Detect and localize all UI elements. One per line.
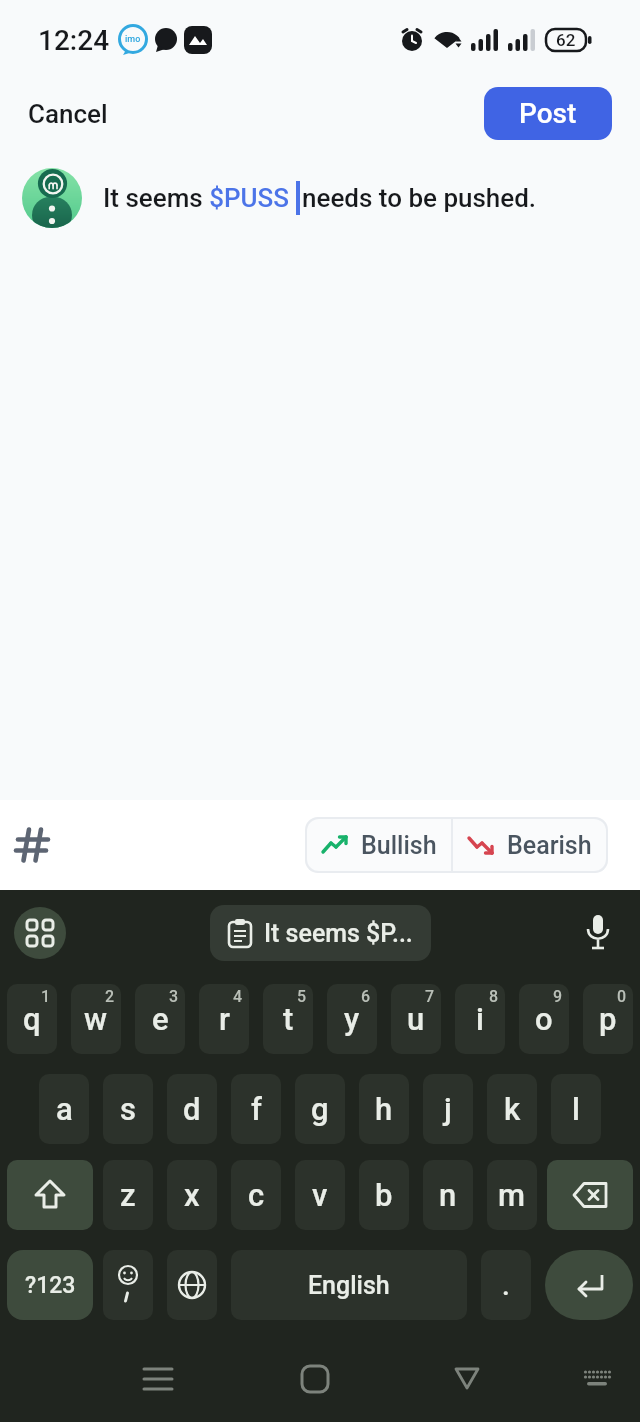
staticText: p	[599, 1001, 617, 1037]
button[interactable]: j	[423, 1074, 473, 1144]
staticText: i	[476, 1001, 484, 1037]
staticText: q	[23, 1001, 41, 1037]
staticText: 2	[105, 987, 115, 1006]
button[interactable]	[578, 913, 618, 953]
button[interactable]: r	[199, 984, 249, 1054]
staticText: r	[219, 1001, 230, 1037]
staticText: t	[283, 1001, 294, 1037]
button[interactable]: l	[551, 1074, 601, 1144]
staticText: needs to be pushed.	[302, 183, 537, 213]
staticText: o	[535, 1001, 553, 1037]
staticText: 9	[553, 987, 563, 1006]
staticText: f	[251, 1091, 262, 1127]
button[interactable]: e	[135, 984, 185, 1054]
staticText: a	[56, 1091, 73, 1127]
button[interactable]: .	[481, 1250, 531, 1320]
button[interactable]: a	[39, 1074, 89, 1144]
staticText: h	[375, 1091, 393, 1127]
button[interactable]: k	[487, 1074, 537, 1144]
button[interactable]: v	[295, 1160, 345, 1230]
button[interactable]: m	[487, 1160, 537, 1230]
staticText: It seems $PUSS	[103, 183, 296, 213]
button[interactable]	[547, 1160, 633, 1230]
staticText: g	[311, 1091, 329, 1127]
staticText: 1	[41, 987, 51, 1006]
button[interactable]: Post	[484, 87, 612, 140]
staticText: z	[120, 1177, 136, 1213]
staticText: n	[439, 1177, 457, 1213]
button[interactable]	[140, 1361, 176, 1397]
button[interactable]: t	[263, 984, 313, 1054]
button[interactable]: f	[231, 1074, 281, 1144]
staticText: u	[407, 1001, 425, 1037]
staticText: d	[183, 1091, 201, 1127]
button[interactable]: p	[583, 984, 633, 1054]
button[interactable]: Cancel	[28, 99, 108, 129]
staticText: imo	[125, 34, 141, 45]
staticText: English	[308, 1271, 390, 1300]
button[interactable]	[167, 1250, 217, 1320]
button[interactable]: c	[231, 1160, 281, 1230]
staticText: Bearish	[507, 831, 592, 860]
staticText: w	[84, 1001, 108, 1037]
button[interactable]	[14, 907, 66, 959]
staticText: s	[120, 1091, 136, 1127]
button[interactable]: s	[103, 1074, 153, 1144]
button[interactable]: Bearish	[453, 819, 606, 871]
button[interactable]: b	[359, 1160, 409, 1230]
button[interactable]: g	[295, 1074, 345, 1144]
staticText: v	[312, 1177, 328, 1213]
staticText: 3	[169, 987, 179, 1006]
button[interactable]	[580, 1362, 614, 1396]
staticText: y	[344, 1001, 360, 1037]
staticText: b	[375, 1177, 393, 1213]
button[interactable]: u	[391, 984, 441, 1054]
staticText: j	[444, 1091, 452, 1127]
button[interactable]	[7, 1160, 93, 1230]
staticText: l	[572, 1091, 580, 1127]
button[interactable]: y	[327, 984, 377, 1054]
button[interactable]	[22, 168, 82, 228]
staticText: k	[504, 1091, 521, 1127]
button[interactable]: h	[359, 1074, 409, 1144]
staticText: Post	[519, 97, 577, 130]
staticText: 8	[489, 987, 499, 1006]
button[interactable]: d	[167, 1074, 217, 1144]
staticText: Bullish	[361, 831, 437, 860]
staticText: e	[152, 1001, 169, 1037]
button[interactable]	[449, 1361, 485, 1397]
staticText: x	[184, 1177, 200, 1213]
staticText: 4	[233, 987, 243, 1006]
staticText: ?123	[25, 1272, 76, 1299]
button[interactable]: Bullish	[307, 819, 451, 871]
button[interactable]: q	[7, 984, 57, 1054]
button[interactable]: o	[519, 984, 569, 1054]
button[interactable]	[103, 1250, 153, 1320]
button[interactable]	[10, 823, 54, 867]
staticText: It seems $P...	[264, 919, 413, 948]
button[interactable]	[545, 1250, 633, 1320]
button[interactable]: n	[423, 1160, 473, 1230]
button[interactable]: x	[167, 1160, 217, 1230]
staticText: 0	[617, 987, 627, 1006]
button[interactable]: It seems $P...	[210, 905, 431, 961]
button[interactable]: English	[231, 1250, 467, 1320]
staticText: Cancel	[28, 99, 108, 129]
staticText: 6	[361, 987, 371, 1006]
staticText: 7	[425, 987, 435, 1006]
staticText: c	[248, 1177, 265, 1213]
button[interactable]: ?123	[7, 1250, 93, 1320]
button[interactable]: z	[103, 1160, 153, 1230]
button[interactable]: w	[71, 984, 121, 1054]
staticText: 12:24	[38, 24, 110, 57]
staticText: 62	[556, 30, 576, 50]
button[interactable]: i	[455, 984, 505, 1054]
staticText: 5	[297, 987, 307, 1006]
staticText: .	[502, 1269, 510, 1302]
staticText: m	[498, 1177, 526, 1213]
button[interactable]	[297, 1361, 333, 1397]
